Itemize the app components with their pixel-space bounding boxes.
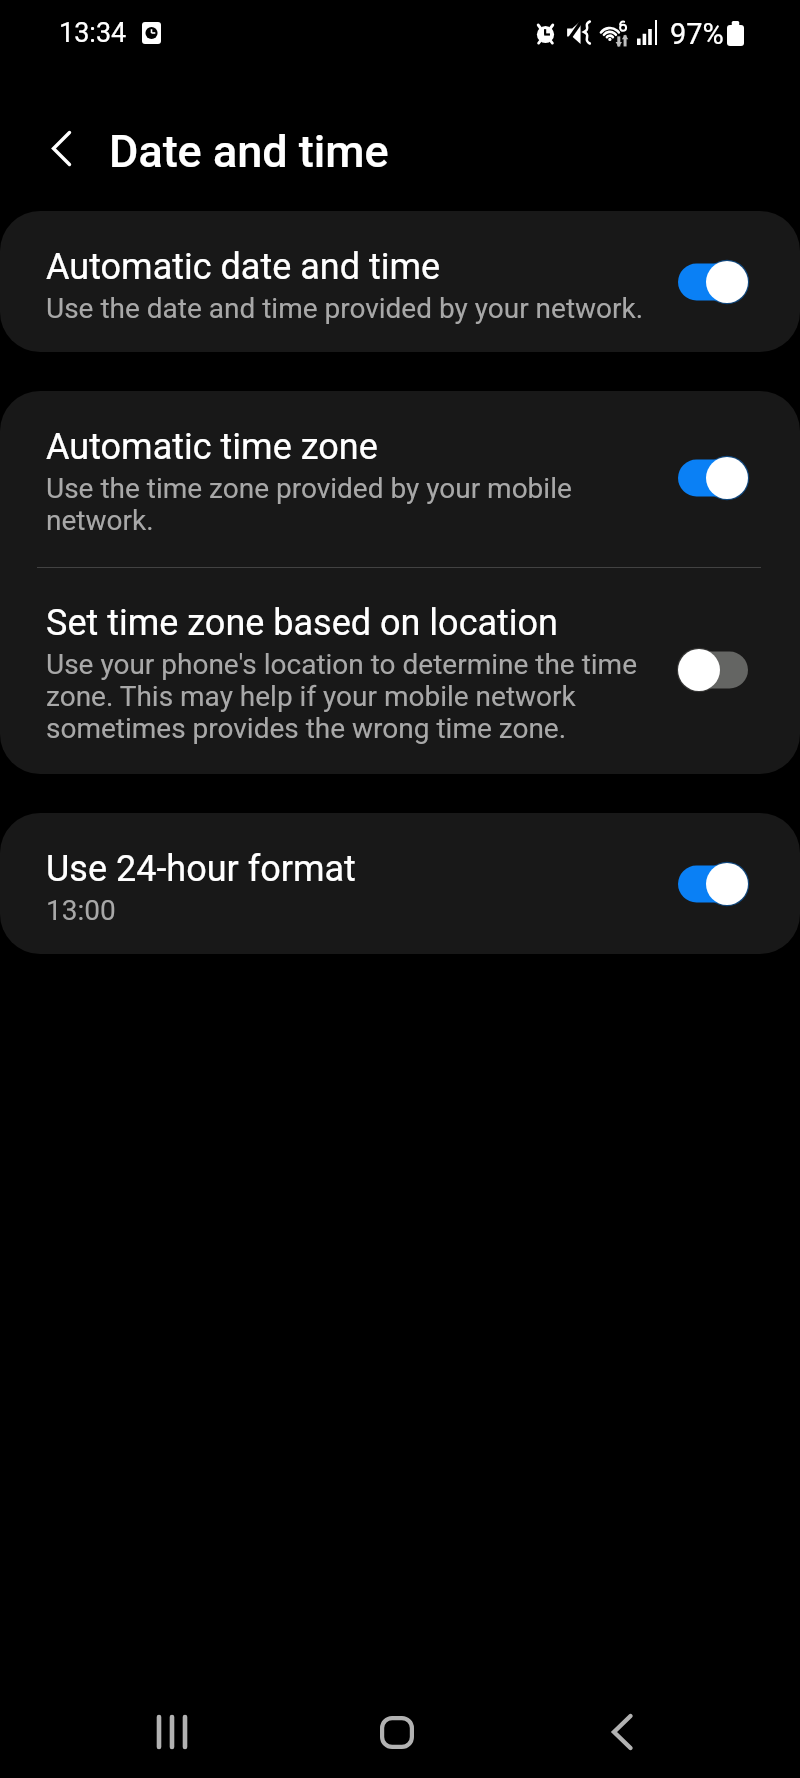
staticText: 13:00 — [46, 895, 116, 927]
button[interactable]: Recent apps — [116, 1686, 228, 1778]
button[interactable]: Use 24-hour format — [0, 813, 800, 954]
button[interactable]: On — [678, 857, 748, 911]
staticText: Automatic time zone — [46, 426, 378, 468]
staticText: Use your phone's location to determine t… — [46, 649, 658, 745]
staticText: Use the time zone provided by your mobil… — [46, 473, 658, 537]
button[interactable]: On — [678, 451, 748, 505]
button[interactable]: Navigate up — [27, 120, 83, 176]
button[interactable]: Back — [566, 1686, 678, 1778]
button[interactable]: Off — [678, 643, 748, 697]
button[interactable]: On — [678, 255, 748, 309]
button[interactable]: Set time zone based on location — [0, 568, 800, 774]
staticText: Set time zone based on location — [46, 602, 558, 644]
staticText: Automatic date and time — [46, 246, 441, 288]
staticText: Use 24-hour format — [46, 848, 356, 890]
button[interactable]: Home — [341, 1686, 453, 1778]
staticText: 13:34 — [59, 17, 127, 49]
staticText: 97% — [670, 17, 724, 51]
button[interactable]: Automatic time zone — [0, 391, 800, 567]
staticText: Date and time — [109, 125, 389, 178]
staticText: Use the date and time provided by your n… — [46, 293, 644, 325]
button[interactable]: Automatic date and time — [0, 211, 800, 352]
